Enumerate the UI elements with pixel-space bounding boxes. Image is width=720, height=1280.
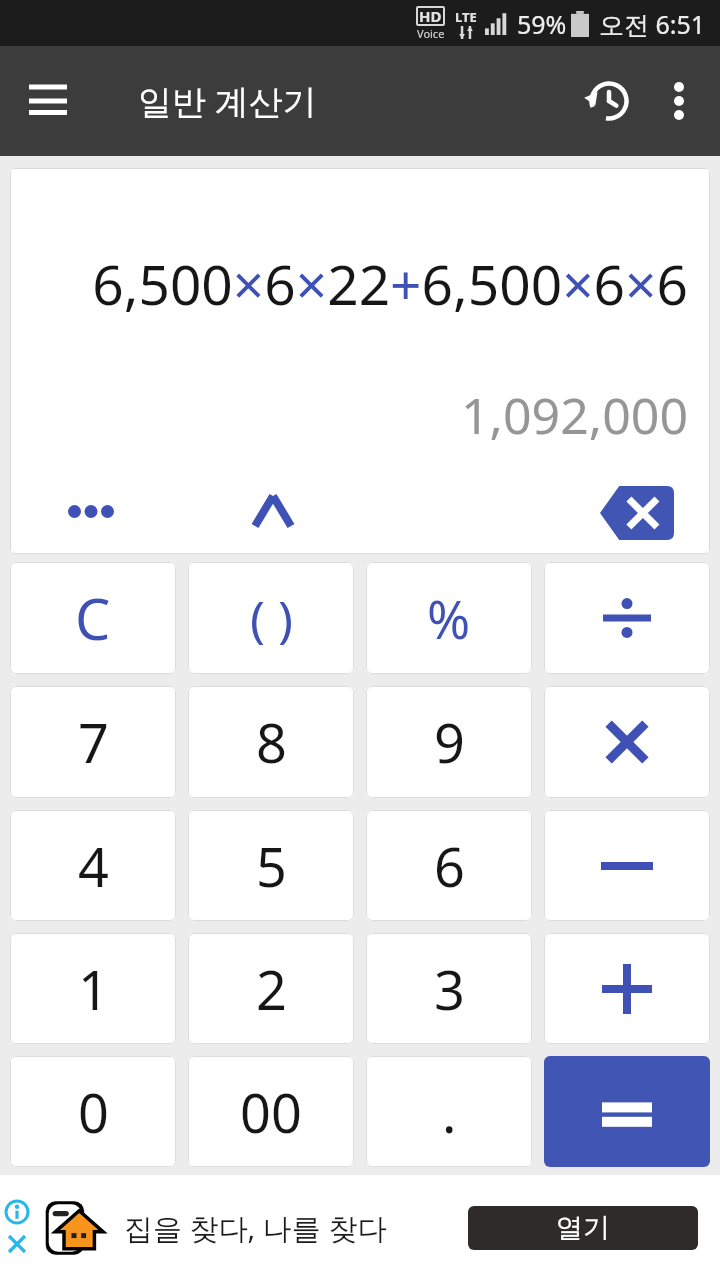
button[interactable]: 8 <box>188 686 354 798</box>
staticText: 7 <box>78 705 109 779</box>
button[interactable]: 0 <box>10 1056 176 1167</box>
button[interactable]: 3 <box>366 933 532 1044</box>
staticText: 4 <box>78 829 109 903</box>
staticText: ( ) <box>250 584 293 652</box>
button[interactable]: 1 <box>10 933 176 1044</box>
staticText: 집을 찾다, 나를 찾다 <box>124 1208 387 1248</box>
button[interactable]: More <box>56 476 126 546</box>
button[interactable]: % <box>366 562 532 674</box>
button[interactable]: Menu <box>14 67 82 135</box>
staticText: 9 <box>434 705 465 779</box>
button[interactable]: 열기 <box>468 1206 698 1250</box>
button[interactable]: 9 <box>366 686 532 798</box>
button[interactable]: 7 <box>10 686 176 798</box>
staticText: 5 <box>256 829 287 903</box>
staticText: 2 <box>256 952 287 1026</box>
staticText: 열기 <box>556 1211 610 1245</box>
staticText: 6,500×6×22+6,500×6×6 <box>92 246 688 321</box>
button[interactable]: Add <box>544 933 710 1044</box>
button[interactable]: 4 <box>10 810 176 921</box>
staticText: 00 <box>240 1075 302 1149</box>
button[interactable]: C <box>10 562 176 674</box>
button[interactable]: . <box>366 1056 532 1167</box>
staticText: % <box>427 583 471 654</box>
staticText: 1 <box>78 952 109 1026</box>
button[interactable]: 6 <box>366 810 532 921</box>
button[interactable]: Multiply <box>544 686 710 798</box>
button[interactable]: Divide <box>544 562 710 674</box>
button[interactable]: 2 <box>188 933 354 1044</box>
staticText: 59% <box>517 7 567 41</box>
button[interactable]: Subtract <box>544 810 710 921</box>
staticText: 6 <box>434 829 465 903</box>
button[interactable]: 00 <box>188 1056 354 1167</box>
button[interactable]: 5 <box>188 810 354 921</box>
staticText: . <box>442 1075 457 1149</box>
button[interactable]: Expand <box>238 476 308 546</box>
button[interactable]: Backspace <box>594 482 680 544</box>
staticText: HD <box>419 6 442 26</box>
button[interactable]: More options <box>648 70 710 132</box>
staticText: C <box>75 580 111 656</box>
staticText: Voice <box>417 26 445 41</box>
button[interactable]: Equals <box>544 1056 710 1167</box>
staticText: 3 <box>434 952 465 1026</box>
staticText: 1,092,000 <box>461 381 688 449</box>
staticText: 8 <box>256 705 287 779</box>
staticText: 일반 계산기 <box>138 78 317 124</box>
staticText: 0 <box>78 1075 109 1149</box>
button[interactable]: ( ) <box>188 562 354 674</box>
staticText: 오전 6:51 <box>599 7 706 41</box>
button[interactable]: History <box>570 62 648 140</box>
staticText: LTE <box>455 8 477 26</box>
